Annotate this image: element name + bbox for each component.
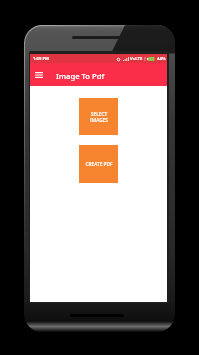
- staticText: 44%: [157, 56, 166, 62]
- staticText: 1:09 PM: [33, 56, 50, 62]
- staticText: SELECT IMAGES: [90, 111, 108, 123]
- button[interactable]: Open navigation drawer: [30, 63, 48, 86]
- staticText: VoLTE: [130, 56, 143, 62]
- staticText: CREATE PDF: [85, 161, 113, 168]
- button[interactable]: CREATE PDF: [79, 145, 118, 183]
- button[interactable]: SELECT IMAGES: [79, 98, 118, 135]
- staticText: Image To Pdf: [56, 71, 105, 81]
